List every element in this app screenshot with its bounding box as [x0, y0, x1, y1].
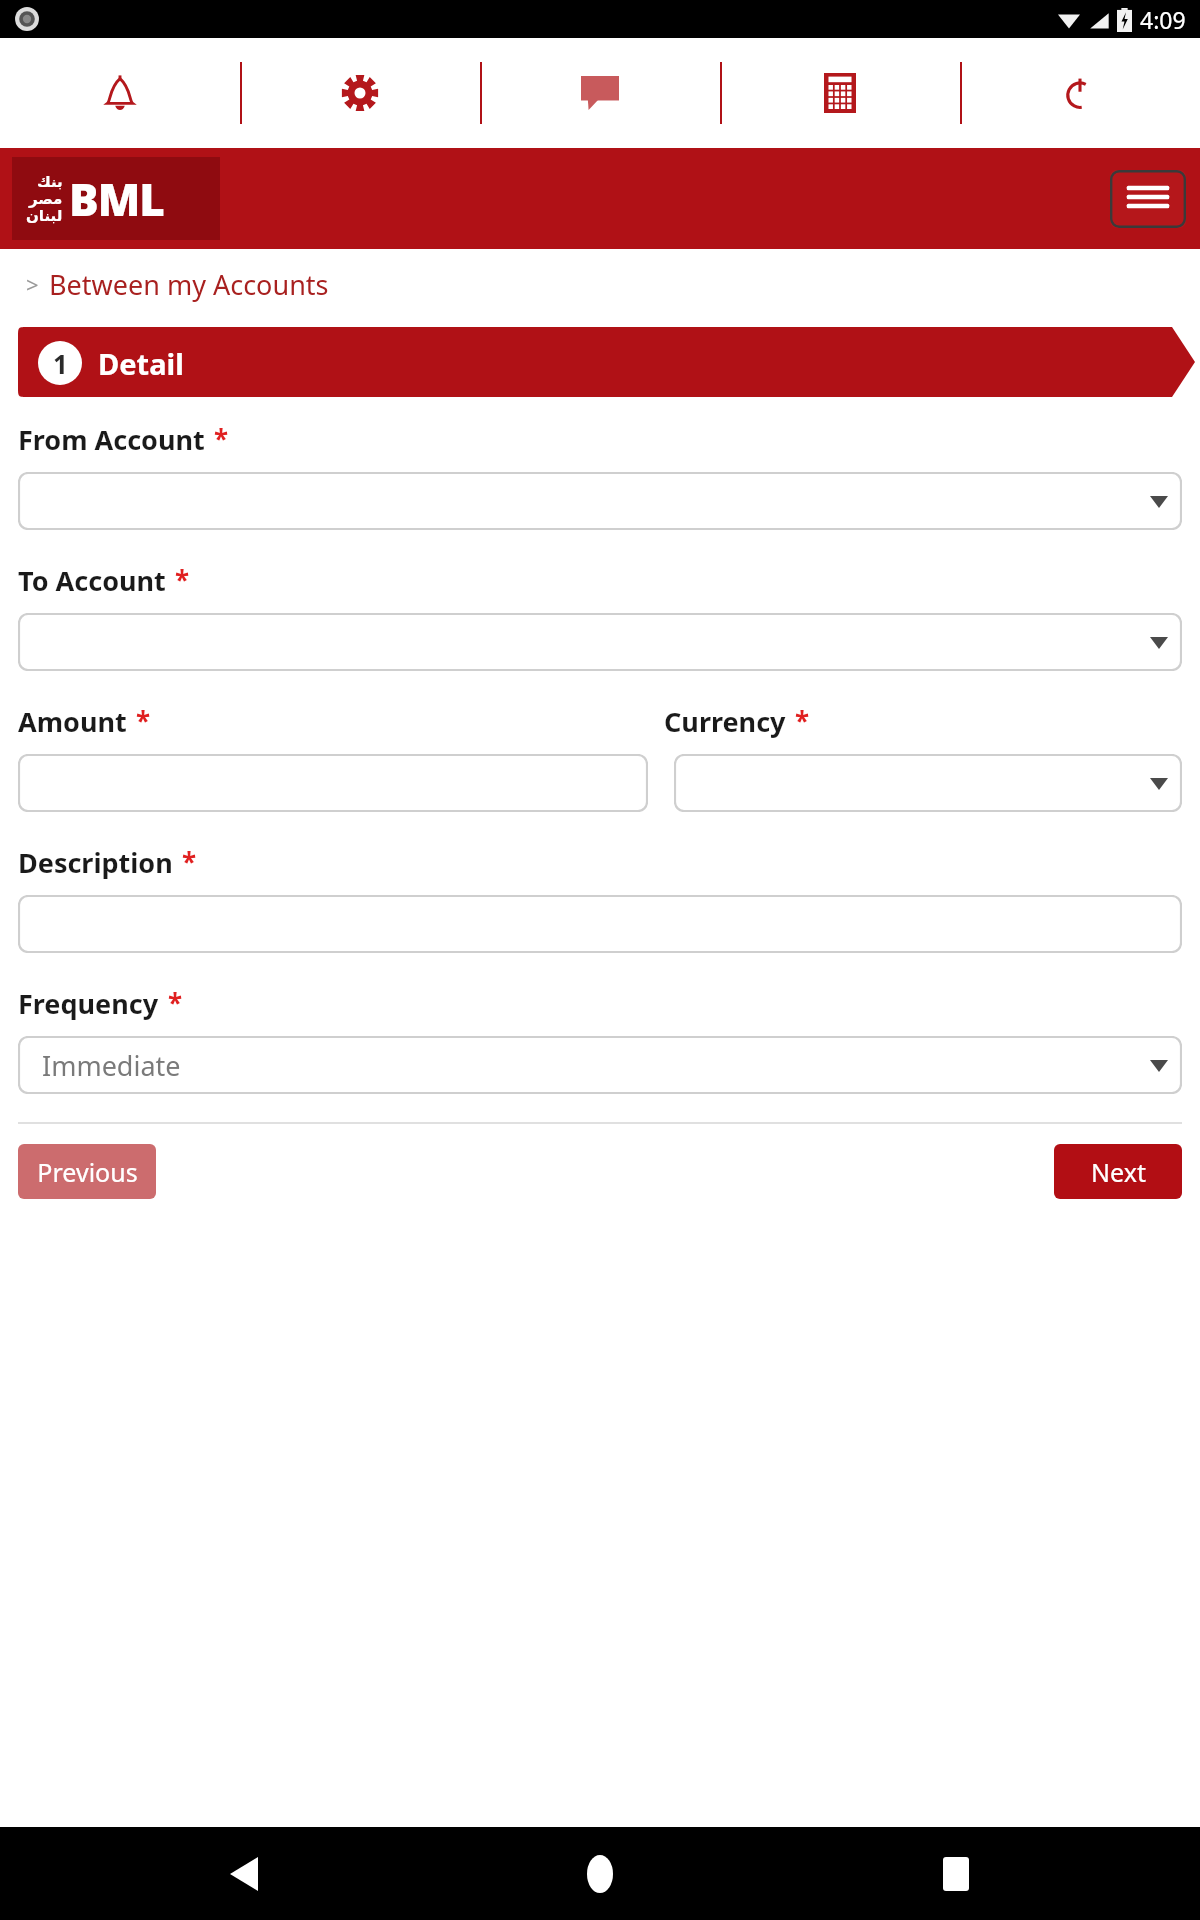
- staticText: *: [182, 844, 197, 879]
- staticText: Amount: [18, 703, 127, 740]
- button[interactable]: [18, 472, 1182, 530]
- staticText: 4:09: [1140, 4, 1186, 35]
- button[interactable]: [18, 895, 1182, 953]
- staticText: *: [214, 421, 229, 456]
- button[interactable]: Recent apps: [916, 1834, 996, 1914]
- button[interactable]: Menu: [1110, 170, 1186, 228]
- button[interactable]: 1: [0, 319, 1200, 407]
- button[interactable]: [18, 613, 1182, 671]
- staticText: مصر: [29, 190, 63, 207]
- button[interactable]: Previous: [18, 1144, 156, 1199]
- staticText: *: [136, 703, 151, 738]
- button[interactable]: بنك: [12, 157, 220, 240]
- button[interactable]: Notifications: [0, 38, 240, 148]
- staticText: Description: [18, 844, 173, 881]
- staticText: Between my Accounts: [49, 266, 329, 303]
- button[interactable]: Next: [1054, 1144, 1182, 1199]
- button[interactable]: Immediate: [18, 1036, 1182, 1094]
- button[interactable]: [674, 754, 1182, 812]
- button[interactable]: Back: [204, 1834, 284, 1914]
- staticText: >: [26, 269, 39, 299]
- staticText: Immediate: [42, 1047, 181, 1084]
- button[interactable]: Home: [560, 1834, 640, 1914]
- staticText: 1: [53, 346, 68, 381]
- button[interactable]: Log out: [960, 38, 1200, 148]
- staticText: لبنان: [26, 207, 63, 224]
- staticText: Detail: [98, 344, 184, 383]
- staticText: Next: [1091, 1155, 1146, 1189]
- staticText: *: [168, 985, 183, 1020]
- staticText: BML: [69, 169, 164, 229]
- staticText: Frequency: [18, 985, 159, 1022]
- staticText: Previous: [37, 1155, 138, 1189]
- button[interactable]: Settings: [240, 38, 480, 148]
- staticText: بنك: [37, 173, 63, 190]
- staticText: Currency: [664, 703, 786, 740]
- button[interactable]: [18, 754, 648, 812]
- button[interactable]: Calculator: [720, 38, 960, 148]
- button[interactable]: Messages: [480, 38, 720, 148]
- staticText: *: [795, 703, 810, 738]
- staticText: *: [175, 562, 190, 597]
- button[interactable]: Between my Accounts: [49, 266, 329, 303]
- staticText: To Account: [18, 562, 166, 599]
- staticText: From Account: [18, 421, 205, 458]
